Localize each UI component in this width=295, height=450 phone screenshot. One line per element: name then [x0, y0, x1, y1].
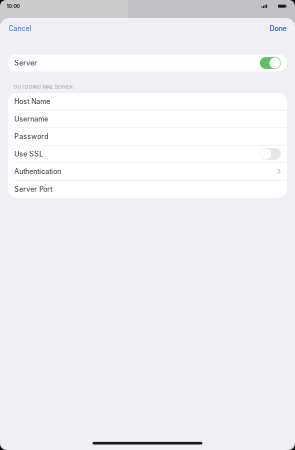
staticText: Use SSL	[14, 150, 43, 158]
button[interactable]: Server	[0, 54, 295, 71]
button[interactable]: Username	[8, 110, 287, 128]
button[interactable]: Authentication	[8, 163, 287, 180]
staticText: Username	[14, 115, 48, 123]
staticText: Host Name	[14, 97, 50, 106]
staticText: Authentication	[14, 167, 61, 176]
staticText: 10:00	[6, 3, 19, 9]
staticText: OUTGOING MAIL SERVER	[13, 84, 72, 90]
button[interactable]: Use SSL	[8, 145, 287, 163]
button[interactable]: Host Name	[8, 93, 287, 110]
staticText: Cancel	[8, 24, 31, 33]
staticText: Password	[14, 132, 48, 141]
staticText: Server	[14, 59, 37, 67]
staticText: Server Port	[14, 185, 52, 193]
button[interactable]: Server Port	[8, 180, 287, 198]
button[interactable]: Done	[267, 21, 288, 36]
staticText: Done	[269, 24, 286, 33]
button[interactable]: Cancel	[6, 21, 33, 36]
button[interactable]: Password	[8, 128, 287, 145]
